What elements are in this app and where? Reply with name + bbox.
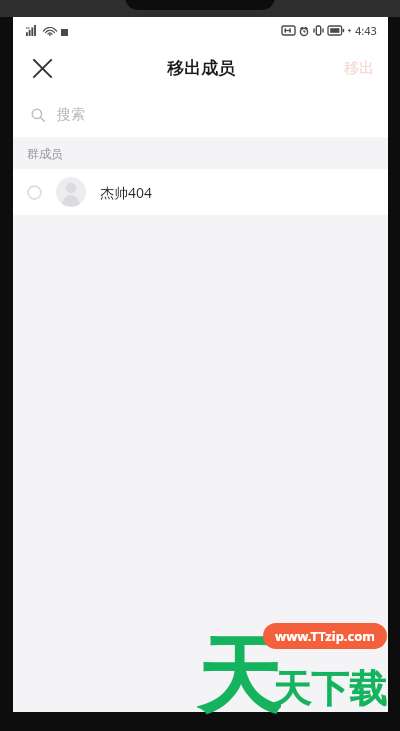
button[interactable]: 杰帅404 — [13, 169, 388, 215]
staticText: 移出 — [344, 59, 374, 78]
staticText: www.TTzip.com — [275, 627, 376, 645]
staticText: 群成员 — [27, 146, 63, 161]
button[interactable]: 移出 — [330, 44, 388, 92]
staticText: 杰帅404 — [100, 183, 153, 202]
staticText: 天 — [197, 624, 281, 719]
staticText: 移出成员 — [167, 58, 235, 79]
button[interactable]: 搜索 — [13, 92, 388, 137]
button[interactable]: Close — [21, 47, 63, 89]
staticText: 4:43 — [355, 23, 377, 38]
staticText: 搜索 — [57, 106, 85, 124]
staticText: 天下载 — [273, 665, 387, 713]
